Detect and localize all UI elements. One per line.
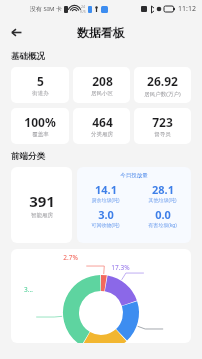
staticText: 街道办: [32, 90, 49, 97]
staticText: 3…: [24, 285, 33, 294]
button[interactable]: 464: [73, 108, 130, 144]
button[interactable]: 208: [73, 67, 130, 103]
staticText: 前端分类: [11, 151, 45, 162]
staticText: 208: [92, 73, 113, 89]
staticText: 723: [152, 114, 173, 130]
button[interactable]: 100%: [11, 108, 69, 144]
staticText: 数据看板: [77, 25, 125, 40]
staticText: 居民户数(万户): [144, 90, 181, 98]
staticText: 覆盖率: [32, 131, 49, 138]
staticText: 分类厢房: [91, 131, 113, 138]
staticText: 24 K/S: [80, 4, 86, 14]
staticText: 26.92: [147, 73, 178, 89]
staticText: 智能厢房: [31, 212, 53, 219]
staticText: 3.0: [98, 207, 114, 222]
staticText: 没有 SIM 卡: [30, 5, 62, 13]
staticText: 100%: [24, 114, 56, 130]
button[interactable]: 723: [134, 108, 191, 144]
staticText: 14.1: [95, 182, 117, 197]
staticText: 28.1: [152, 182, 174, 197]
staticText: 5: [37, 73, 44, 89]
staticText: 17.3%: [111, 263, 130, 272]
button[interactable]: 返回: [6, 22, 26, 42]
staticText: 督导员: [154, 131, 171, 138]
button[interactable]: 今日投放量: [77, 167, 191, 243]
staticText: 今日投放量: [120, 172, 148, 179]
staticText: 基础概况: [11, 51, 45, 62]
staticText: 其他垃圾(吨): [148, 197, 177, 204]
button[interactable]: 26.92: [134, 67, 191, 103]
staticText: 2.7%: [63, 253, 78, 262]
staticText: 厨余垃圾(吨): [91, 197, 120, 204]
staticText: 居民小区: [91, 90, 113, 97]
staticText: 11:12: [178, 4, 196, 14]
button[interactable]: 391: [11, 167, 72, 243]
staticText: 464: [92, 114, 113, 130]
staticText: 有害垃圾(kg): [148, 222, 177, 229]
button[interactable]: 5: [11, 67, 69, 103]
staticText: 391: [29, 191, 55, 211]
staticText: 0.0: [155, 207, 171, 222]
staticText: 可回收物(吨): [91, 222, 120, 229]
